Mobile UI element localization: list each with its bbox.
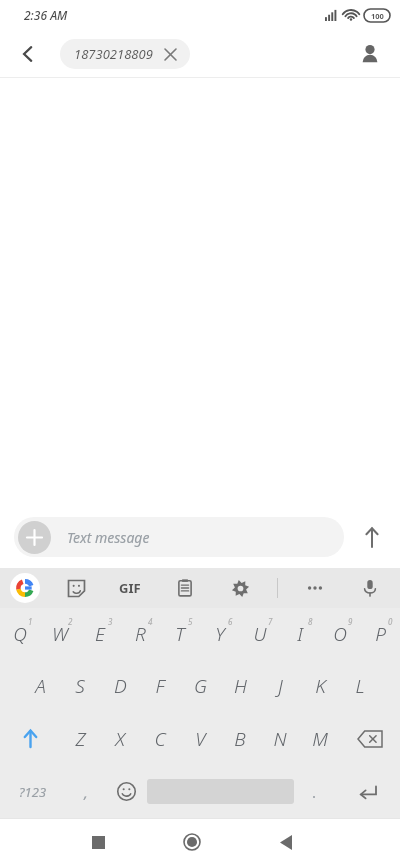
staticText: 8 xyxy=(308,616,313,627)
button[interactable]: E xyxy=(80,608,120,660)
staticText: L xyxy=(355,673,365,699)
staticText: 7 xyxy=(268,616,273,627)
staticText: 6 xyxy=(228,616,233,627)
button[interactable]: Send xyxy=(344,513,400,561)
staticText: T xyxy=(175,621,185,647)
button[interactable]: 18730218809 xyxy=(60,39,190,69)
staticText: I xyxy=(297,621,303,647)
button[interactable]: Backspace xyxy=(340,712,400,765)
staticText: X xyxy=(115,726,125,752)
staticText: K xyxy=(315,673,326,699)
staticText: ?123 xyxy=(19,783,47,801)
button[interactable]: Stickers xyxy=(58,570,94,606)
button[interactable]: GIF xyxy=(112,570,148,606)
staticText: . xyxy=(312,782,317,802)
button[interactable]: W xyxy=(40,608,80,660)
button[interactable]: H xyxy=(220,660,260,712)
button[interactable]: Z xyxy=(60,712,100,765)
staticText: Y xyxy=(215,621,225,647)
button[interactable]: V xyxy=(180,712,220,765)
button[interactable]: Q xyxy=(0,608,40,660)
staticText: D xyxy=(114,673,127,699)
staticText: S xyxy=(75,673,85,699)
button[interactable]: Contact xyxy=(350,34,390,74)
button[interactable]: , xyxy=(65,765,106,818)
button[interactable]: M xyxy=(300,712,340,765)
staticText: W xyxy=(52,621,68,647)
button[interactable]: U xyxy=(240,608,280,660)
staticText: E xyxy=(95,621,105,647)
button[interactable]: Enter xyxy=(335,765,400,818)
staticText: G xyxy=(194,673,207,699)
button[interactable]: C xyxy=(140,712,180,765)
button[interactable]: Recents xyxy=(75,819,121,865)
button[interactable]: Emoji xyxy=(106,765,147,818)
button[interactable]: G xyxy=(180,660,220,712)
staticText: O xyxy=(333,621,347,647)
staticText: 3 xyxy=(108,616,113,627)
staticText: N xyxy=(273,726,287,752)
button[interactable]: J xyxy=(260,660,300,712)
button[interactable]: Home xyxy=(169,819,215,865)
staticText: 1 xyxy=(28,616,33,627)
button[interactable]: Settings xyxy=(222,570,258,606)
button[interactable]: ?123 xyxy=(0,765,65,818)
staticText: U xyxy=(253,621,267,647)
button[interactable]: Shift xyxy=(0,712,60,765)
staticText: 18730218809 xyxy=(74,45,153,63)
button[interactable]: O xyxy=(320,608,360,660)
staticText: 5 xyxy=(188,616,193,627)
button[interactable]: Y xyxy=(200,608,240,660)
button[interactable]: B xyxy=(220,712,260,765)
staticText: Text message xyxy=(67,528,150,547)
button[interactable]: L xyxy=(340,660,380,712)
button[interactable]: D xyxy=(100,660,140,712)
staticText: A xyxy=(35,673,46,699)
button[interactable]: I xyxy=(280,608,320,660)
button[interactable]: Back xyxy=(263,819,309,865)
button[interactable]: Google xyxy=(10,573,40,603)
button[interactable]: T xyxy=(160,608,200,660)
button[interactable]: X xyxy=(100,712,140,765)
button[interactable]: Text message xyxy=(14,517,344,557)
staticText: , xyxy=(84,782,88,802)
staticText: B xyxy=(234,726,246,752)
staticText: GIF xyxy=(119,579,141,597)
staticText: R xyxy=(135,621,146,647)
staticText: Z xyxy=(75,726,86,752)
staticText: 0 xyxy=(388,616,393,627)
button[interactable]: R xyxy=(120,608,160,660)
staticText: Q xyxy=(13,621,27,647)
button[interactable]: P xyxy=(360,608,400,660)
staticText: 9 xyxy=(348,616,353,627)
button[interactable]: Voice input xyxy=(352,570,388,606)
button[interactable]: More options xyxy=(297,570,333,606)
staticText: F xyxy=(155,673,165,699)
button[interactable]: A xyxy=(20,660,60,712)
staticText: 100 xyxy=(371,11,384,21)
staticText: C xyxy=(154,726,166,752)
staticText: M xyxy=(312,726,328,752)
button[interactable]: Back xyxy=(8,34,48,74)
staticText: V xyxy=(195,726,206,752)
staticText: 2 xyxy=(68,616,73,627)
staticText: 2:36 AM xyxy=(24,7,68,23)
staticText: H xyxy=(234,673,247,699)
button[interactable]: Clipboard xyxy=(167,570,203,606)
staticText: 4 xyxy=(148,616,153,627)
button[interactable]: F xyxy=(140,660,180,712)
button[interactable]: S xyxy=(60,660,100,712)
staticText: P xyxy=(375,621,386,647)
button[interactable]: K xyxy=(300,660,340,712)
staticText: J xyxy=(278,673,283,699)
button[interactable]: N xyxy=(260,712,300,765)
